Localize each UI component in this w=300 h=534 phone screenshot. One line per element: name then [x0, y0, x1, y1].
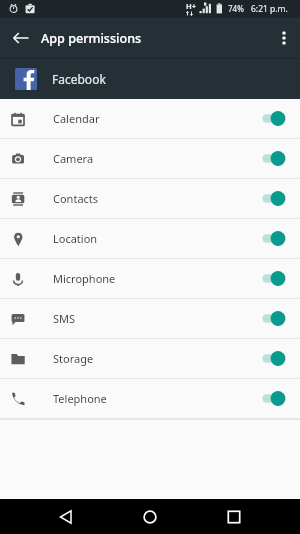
button[interactable]: Calendar [0, 99, 300, 138]
button[interactable]: Recent apps [210, 499, 258, 534]
button[interactable]: Microphone [0, 259, 300, 298]
button[interactable]: Microphone permission toggle [254, 259, 300, 298]
staticText: Telephone [53, 391, 107, 406]
button[interactable]: Storage [0, 339, 300, 378]
staticText: Contacts [53, 191, 99, 206]
button[interactable]: Back [0, 18, 42, 58]
button[interactable]: Back [42, 499, 90, 534]
staticText: Location [53, 231, 98, 246]
staticText: App permissions [41, 30, 142, 47]
button[interactable]: Contacts [0, 179, 300, 218]
staticText: Camera [53, 151, 94, 166]
button[interactable]: Telephone [0, 379, 300, 418]
button[interactable]: Contacts permission toggle [254, 179, 300, 218]
staticText: Calendar [53, 111, 100, 126]
staticText: SMS [53, 311, 76, 326]
staticText: Microphone [53, 271, 116, 286]
button[interactable]: SMS [0, 299, 300, 338]
button[interactable]: Storage permission toggle [254, 339, 300, 378]
staticText: H+ [186, 1, 197, 11]
staticText: Storage [53, 351, 94, 366]
button[interactable]: Telephone permission toggle [254, 379, 300, 418]
staticText: 74% [228, 3, 244, 14]
staticText: 6:21 p.m. [251, 3, 288, 15]
button[interactable]: Camera [0, 139, 300, 178]
button[interactable]: Facebook [0, 59, 300, 99]
button[interactable]: Camera permission toggle [254, 139, 300, 178]
staticText: Facebook [52, 71, 106, 87]
button[interactable]: Home [126, 499, 174, 534]
button[interactable]: Calendar permission toggle [254, 99, 300, 138]
button[interactable]: More options [267, 18, 300, 58]
button[interactable]: SMS permission toggle [254, 299, 300, 338]
button[interactable]: Location permission toggle [254, 219, 300, 258]
button[interactable]: Location [0, 219, 300, 258]
